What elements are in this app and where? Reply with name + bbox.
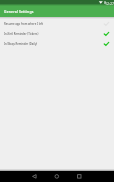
staticText: Resume app from where I left [4,22,104,26]
button[interactable]: In-Kirtl Reminder (Tickers) [0,29,114,39]
staticText: 12:27 [105,1,114,6]
staticText: General Settings [4,9,34,14]
staticText: In-Waqs Reminder (Daily) [4,42,104,46]
button[interactable]: Recents [68,171,90,182]
button[interactable]: Home [46,171,68,182]
button[interactable]: Resume app from where I left [0,19,114,29]
staticText: In-Kirtl Reminder (Tickers) [4,32,104,36]
button[interactable]: Back [24,171,46,182]
button[interactable]: In-Waqs Reminder (Daily) [0,39,114,49]
